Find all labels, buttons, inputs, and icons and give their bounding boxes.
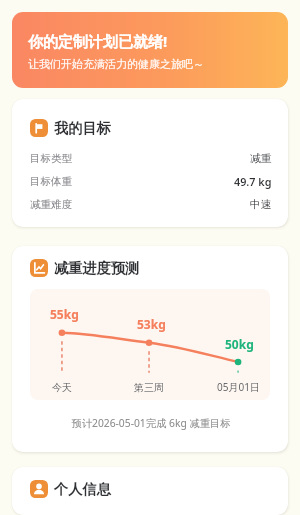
button[interactable]: 目标类型 xyxy=(30,147,272,170)
staticText: 目标类型 xyxy=(30,152,72,165)
button[interactable]: 目标体重 xyxy=(30,170,272,193)
staticText: 减重 xyxy=(250,152,272,166)
staticText: 个人信息 xyxy=(54,480,111,498)
staticText: 53kg xyxy=(137,316,166,332)
staticText: 第三周 xyxy=(134,381,164,394)
staticText: 55kg xyxy=(50,306,79,322)
staticText: 49.7 kg xyxy=(234,174,272,189)
staticText: 中速 xyxy=(250,198,272,212)
button[interactable]: 减重难度 xyxy=(30,193,272,216)
staticText: 目标体重 xyxy=(30,175,72,188)
staticText: 减重难度 xyxy=(30,198,72,211)
staticText: 让我们开始充满活力的健康之旅吧～ xyxy=(28,57,204,71)
button[interactable]: 你的定制计划已就绪! xyxy=(12,12,288,88)
staticText: 我的目标 xyxy=(54,119,111,137)
staticText: 你的定制计划已就绪! xyxy=(28,31,168,51)
staticText: 50kg xyxy=(225,336,254,352)
staticText: 预计2026-05-01完成 6kg 减重目标 xyxy=(30,416,272,430)
staticText: 05月01日 xyxy=(217,380,260,394)
staticText: 减重进度预测 xyxy=(54,259,140,277)
staticText: 今天 xyxy=(52,381,72,394)
